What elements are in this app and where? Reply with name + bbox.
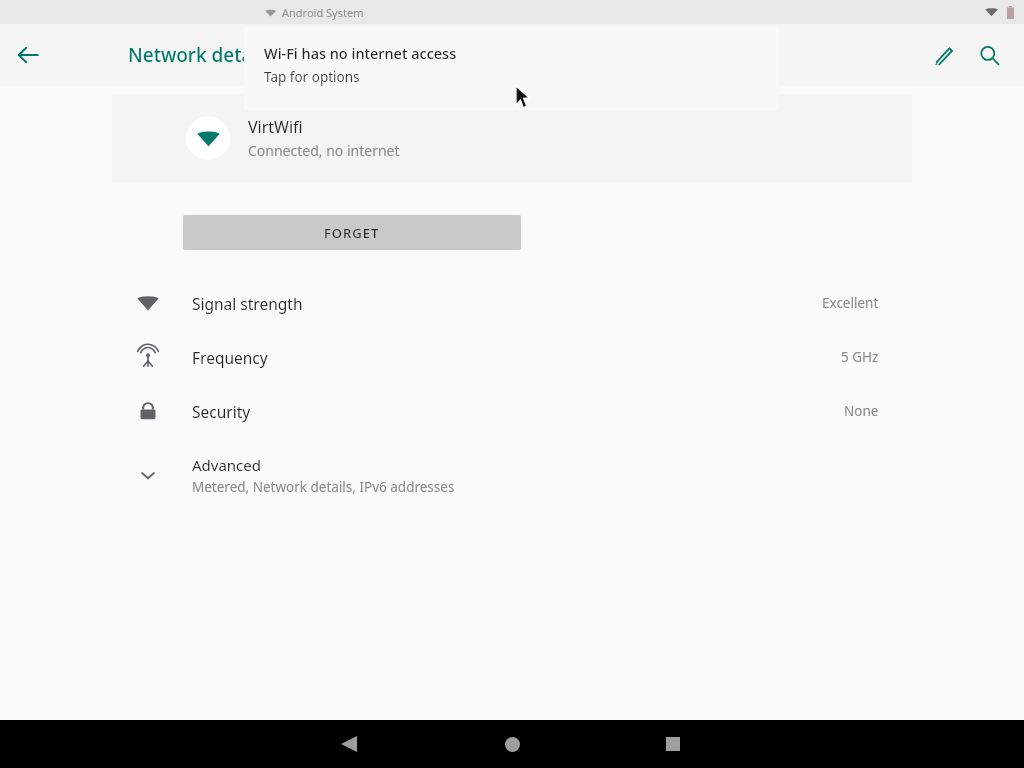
button[interactable]: Edit xyxy=(920,32,966,78)
button[interactable]: Security xyxy=(0,384,1024,438)
staticText: Android System xyxy=(282,5,364,20)
button[interactable]: Recent apps xyxy=(649,720,697,768)
staticText: Signal strength xyxy=(192,293,303,314)
staticText: Excellent xyxy=(822,294,879,312)
staticText: Metered, Network details, IPv6 addresses xyxy=(192,478,455,496)
button[interactable]: Back xyxy=(6,33,50,77)
button[interactable]: Wi-Fi has no internet access xyxy=(244,26,779,110)
staticText: None xyxy=(844,402,879,420)
staticText: Network details xyxy=(128,42,272,68)
staticText: Tap for options xyxy=(264,68,360,86)
staticText: Wi-Fi has no internet access xyxy=(264,43,457,63)
button[interactable]: FORGET xyxy=(183,215,521,250)
staticText: Security xyxy=(192,401,251,422)
staticText: VirtWifi xyxy=(248,116,303,138)
staticText: Frequency xyxy=(192,347,268,368)
button[interactable]: VirtWifi xyxy=(112,94,912,182)
staticText: FORGET xyxy=(324,224,380,242)
staticText: Connected, no internet xyxy=(248,141,400,160)
button[interactable]: Frequency xyxy=(0,330,1024,384)
button[interactable]: Search xyxy=(966,32,1012,78)
button[interactable]: Home xyxy=(488,720,536,768)
button[interactable]: Back xyxy=(325,720,373,768)
staticText: 5 GHz xyxy=(841,348,879,366)
button[interactable]: Signal strength xyxy=(0,276,1024,330)
staticText: Advanced xyxy=(192,455,262,475)
button[interactable]: Advanced xyxy=(0,448,1024,502)
